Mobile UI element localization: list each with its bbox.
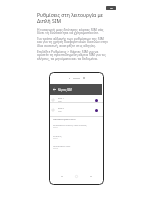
staticText: SIM 1 <box>53 137 59 140</box>
staticText: Η εισαγωγή μιας δεύτερης κάρτας SIM σάς … <box>37 27 104 35</box>
button[interactable]: SIM 1 <box>49 95 104 105</box>
staticText: Προεπιλεγμένη SIM <box>53 117 76 120</box>
staticText: Για τρόπο αλλαγής των ρυθμίσεων της SIM … <box>37 36 109 48</box>
staticText: Δεδομένα κινητής τηλεφωνίας <box>53 123 87 126</box>
button[interactable]: Back <box>50 84 102 95</box>
staticText: SIM 2 <box>53 147 59 150</box>
staticText: ΟΤΕ <box>58 100 62 103</box>
staticText: Κάρτες SIM <box>58 88 72 92</box>
button[interactable]: Home <box>75 175 78 178</box>
button[interactable]: Δεδομένα κινητής τηλεφωνίας <box>49 123 104 129</box>
button[interactable]: SIM 2 <box>49 105 104 115</box>
staticText: Μηνύματα SMS <box>53 144 71 147</box>
staticText: Ρυθμίσεις στη λειτουργία με Διπλή SIM <box>37 12 103 25</box>
staticText: SIM 2 <box>58 107 64 110</box>
staticText: GR <box>110 7 113 10</box>
staticText: Κλήσεις <box>53 134 62 137</box>
other: Back <box>53 88 56 91</box>
staticText: ΟΤΕ <box>58 110 62 113</box>
staticText: Επιλέξτε Ρυθμίσεις > Κάρτες SIM για να ο… <box>37 49 106 61</box>
staticText: SIM 1 <box>53 126 59 129</box>
button[interactable]: Κλήσεις <box>49 134 104 140</box>
button[interactable]: Μηνύματα SMS <box>49 144 104 150</box>
staticText: SIM 1 <box>58 97 64 100</box>
